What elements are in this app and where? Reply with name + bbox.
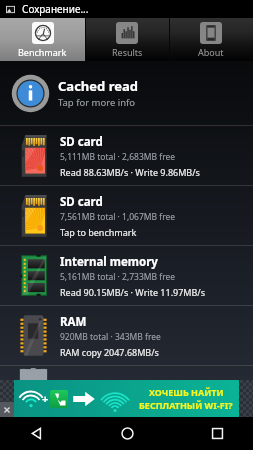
staticText: ХОЧЕШЬ НАЙТИ	[149, 386, 224, 398]
button[interactable]: RAM	[0, 306, 253, 365]
staticText: Internal memory	[60, 254, 158, 270]
button[interactable]: Close ad	[0, 402, 14, 417]
button[interactable]: Back	[21, 418, 51, 448]
button[interactable]: Recents	[202, 418, 232, 448]
button[interactable]: Results	[85, 18, 169, 61]
button[interactable]: Benchmark	[0, 18, 85, 61]
staticText: RAM copy 2047.68MB/s	[60, 346, 159, 358]
staticText: Cached read	[58, 77, 138, 95]
staticText: БЕСПЛАТНЫЙ WI-FI?	[139, 399, 233, 411]
staticText: 5,161MB total · 2,733MB free	[60, 271, 176, 283]
staticText: Tap to benchmark	[60, 226, 137, 238]
staticText: RAM	[60, 314, 87, 330]
staticText: +	[42, 391, 49, 406]
button[interactable]: SD card	[0, 186, 253, 245]
staticText: Tap for more info	[58, 96, 136, 109]
button[interactable]	[0, 366, 253, 380]
button[interactable]: Internal memory	[0, 246, 253, 305]
button[interactable]: SD card	[0, 126, 253, 185]
staticText: About	[198, 46, 224, 58]
staticText: Сохранение...	[22, 2, 89, 16]
button[interactable]: +	[14, 380, 239, 417]
button[interactable]: Cached read	[0, 61, 253, 125]
staticText: Benchmark	[18, 46, 67, 58]
staticText: 920MB total · 343MB free	[60, 331, 161, 343]
button[interactable]: Home	[112, 418, 142, 448]
staticText: Read 90.15MB/s · Write 11.97MB/s	[60, 286, 206, 298]
staticText: SD card	[60, 134, 103, 150]
staticText: Results	[112, 46, 143, 58]
staticText: SD card	[60, 194, 103, 210]
staticText: 5,111MB total · 2,683MB free	[60, 151, 176, 163]
staticText: Read 88.63MB/s · Write 9.86MB/s	[60, 166, 200, 178]
staticText: 7,561MB total · 1,067MB free	[60, 211, 176, 223]
button[interactable]: About	[169, 18, 253, 61]
